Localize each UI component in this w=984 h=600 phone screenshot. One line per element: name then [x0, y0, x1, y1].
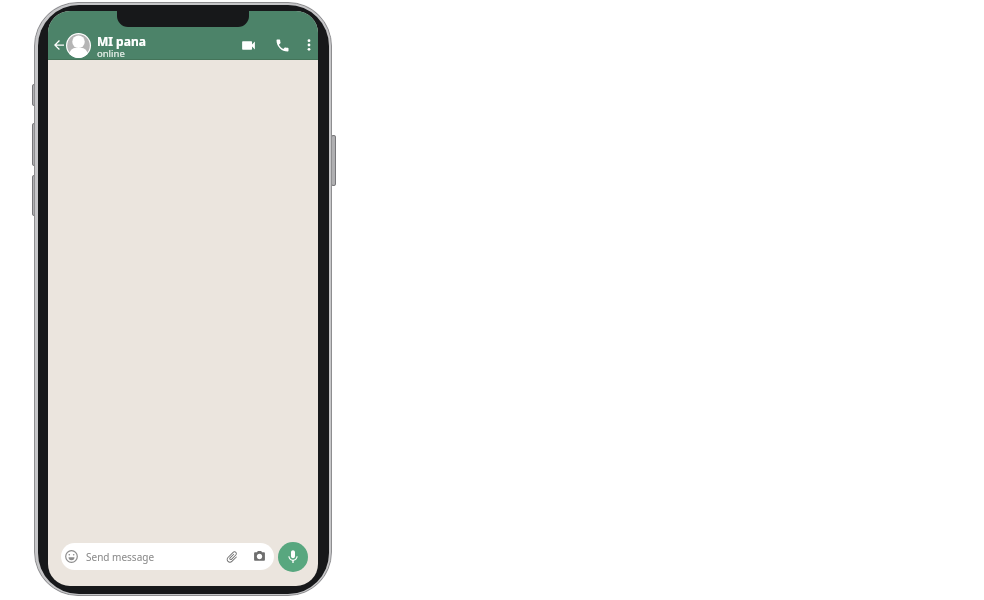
button[interactable]	[238, 35, 259, 56]
button[interactable]	[301, 37, 317, 53]
button[interactable]	[49, 35, 69, 55]
button[interactable]	[272, 35, 293, 56]
staticText: MI pana	[97, 33, 146, 49]
staticText: Send message	[86, 550, 155, 564]
staticText: online	[97, 47, 125, 60]
button[interactable]: Send message	[61, 543, 274, 570]
button[interactable]	[278, 542, 308, 572]
button[interactable]	[66, 33, 91, 58]
